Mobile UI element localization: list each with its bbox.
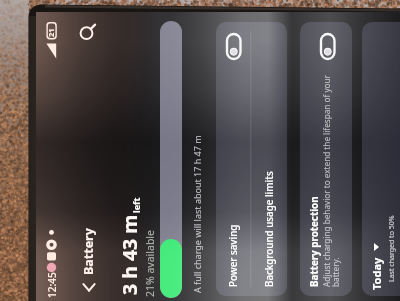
staticText: Power saving [227, 224, 240, 287]
button[interactable]: Toggle [321, 34, 335, 59]
staticText: A full charge will last about 17 h 47 m [191, 135, 203, 293]
button[interactable]: Navigate up [75, 274, 101, 300]
staticText: Adjust charging behavior to extend the l… [321, 59, 342, 287]
button[interactable]: Search [75, 18, 101, 44]
staticText: Background usage limits [263, 171, 276, 287]
button[interactable]: Battery protection [300, 22, 352, 296]
button[interactable]: Background usage limits [251, 22, 287, 296]
button[interactable]: Toggle [227, 34, 241, 59]
staticText: 21% available [143, 230, 157, 297]
staticText: Last charged to 50% [387, 215, 397, 282]
staticText: Battery [80, 228, 97, 275]
staticText: 3 h 43 m [116, 214, 143, 295]
staticText: Battery protection [308, 196, 321, 287]
button[interactable]: Today [366, 228, 386, 290]
staticText: left [130, 197, 142, 213]
button[interactable]: Power saving [216, 22, 251, 296]
staticText: 12:45 [45, 272, 59, 298]
staticText: 21 [46, 28, 56, 37]
staticText: Today [369, 257, 384, 290]
